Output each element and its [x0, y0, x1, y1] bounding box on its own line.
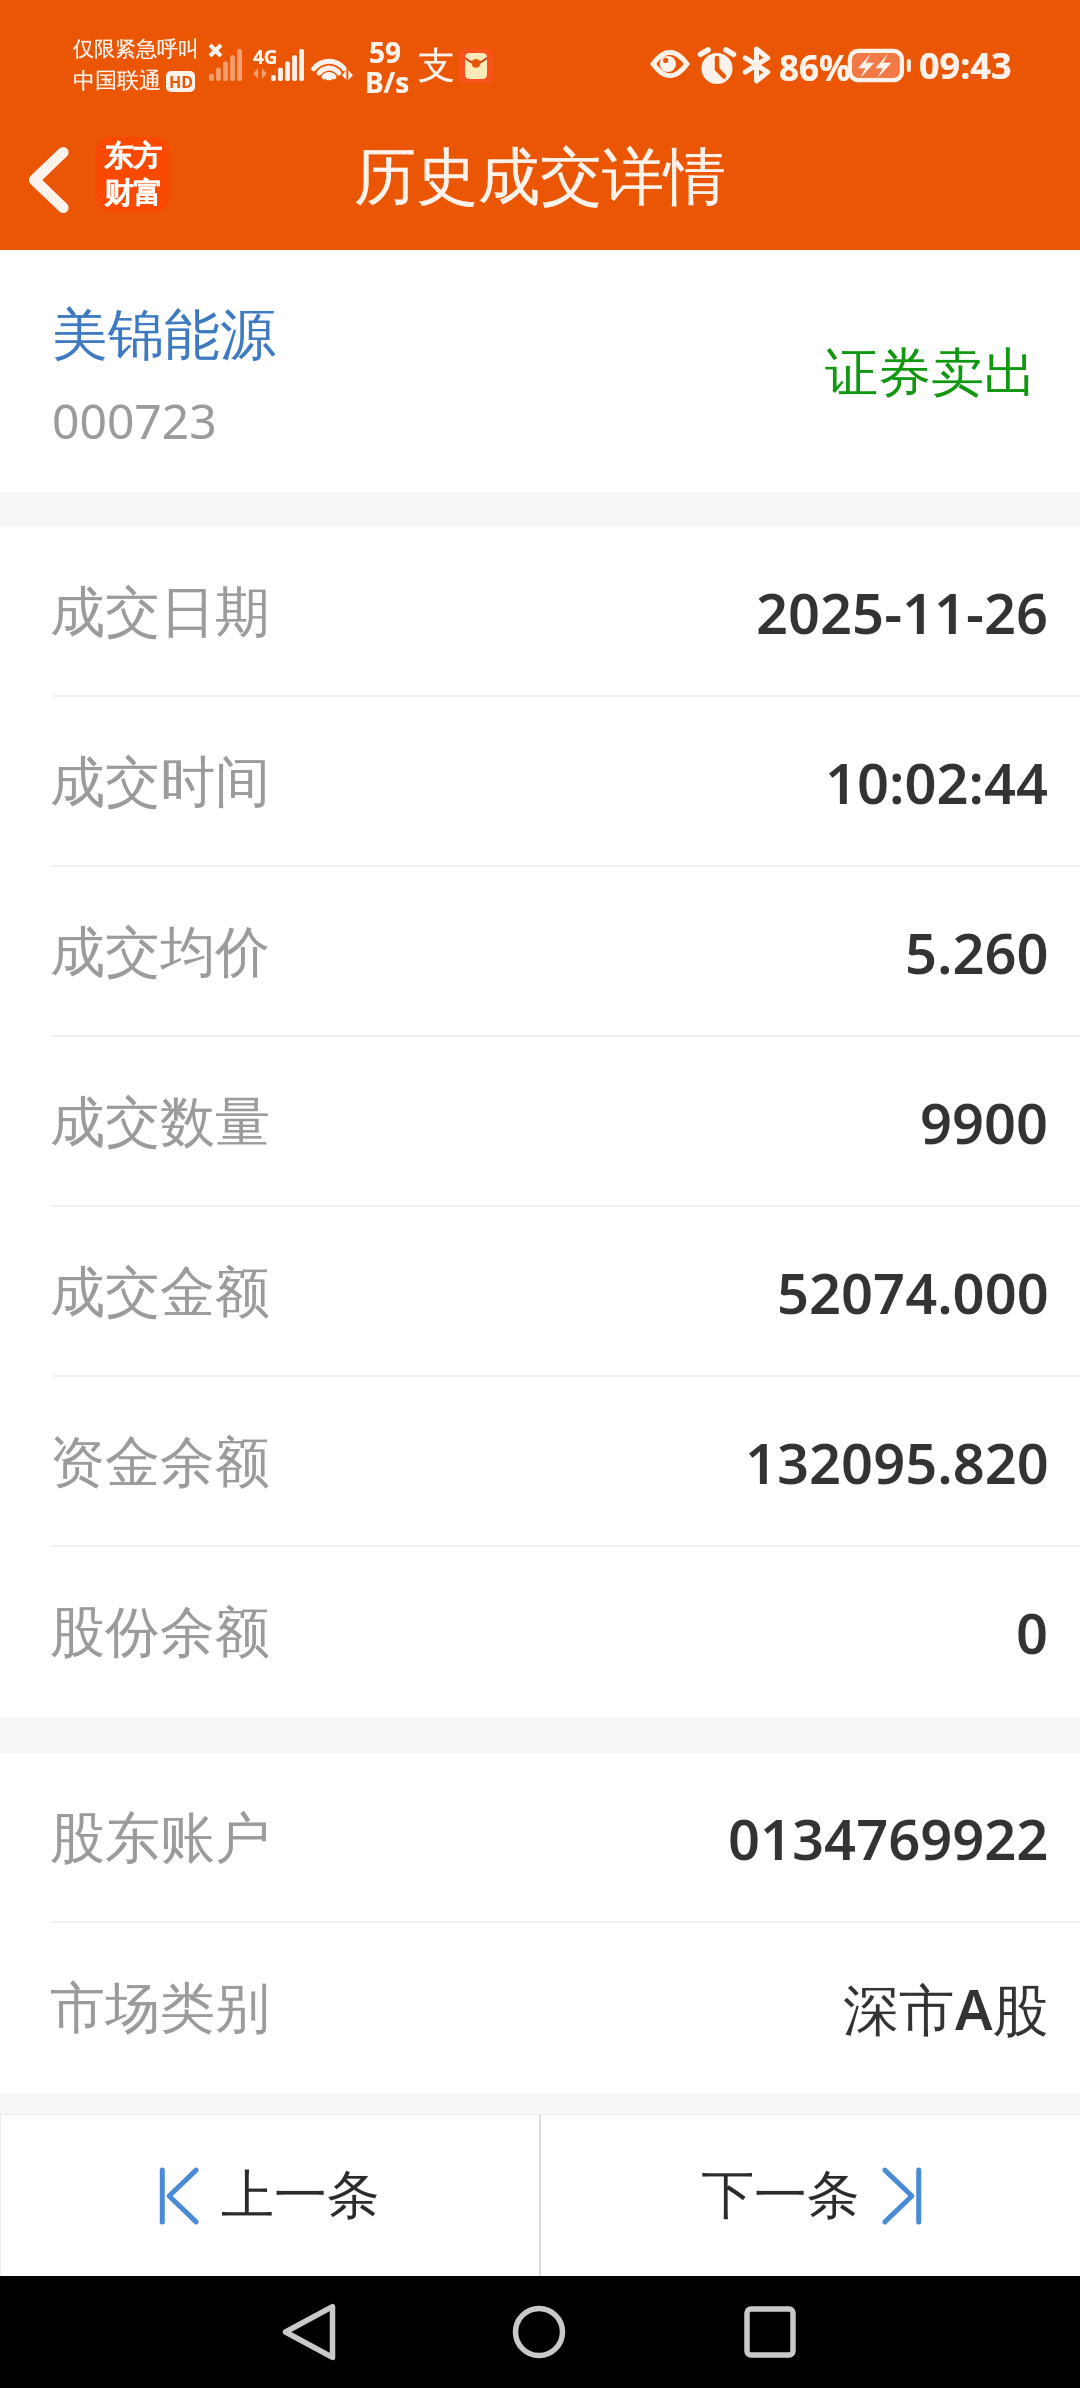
staticText: 财富	[104, 175, 162, 212]
staticText: 10:02:44	[825, 744, 1049, 820]
staticText: 成交数量	[50, 1088, 270, 1157]
button[interactable]: 美锦能源	[0, 250, 1080, 492]
button[interactable]: 成交金额	[0, 1207, 1080, 1377]
staticText: HD	[169, 71, 193, 92]
button[interactable]: 上一条	[1, 2115, 539, 2276]
button[interactable]: 股份余额	[0, 1547, 1080, 1717]
button[interactable]: 资金余额	[0, 1377, 1080, 1547]
button[interactable]: 成交日期	[0, 527, 1080, 697]
staticText: 成交时间	[50, 748, 270, 817]
staticText: 成交均价	[50, 918, 270, 987]
staticText: 股份余额	[50, 1598, 270, 1667]
staticText: 5.260	[905, 914, 1049, 990]
button[interactable]: 下一条	[541, 2115, 1080, 2276]
staticText: 0134769922	[728, 1800, 1049, 1876]
staticText: 成交金额	[50, 1258, 270, 1327]
staticText: 2025-11-26	[756, 574, 1049, 650]
staticText: 股东账户	[50, 1804, 270, 1873]
staticText: 9900	[920, 1084, 1049, 1160]
staticText: 深市A股	[843, 1970, 1049, 2046]
button[interactable]: 市场类别	[0, 1923, 1080, 2093]
staticText: 上一条	[221, 2162, 380, 2229]
button[interactable]: Back	[0, 110, 96, 250]
button[interactable]: 股东账户	[0, 1753, 1080, 1923]
staticText: 市场类别	[50, 1974, 270, 2043]
staticText: 东方	[104, 138, 162, 175]
staticText: 证券卖出	[825, 340, 1037, 407]
button[interactable]: 成交数量	[0, 1037, 1080, 1207]
staticText: 资金余额	[50, 1428, 270, 1497]
staticText: 历史成交详情	[354, 138, 726, 216]
staticText: 下一条	[701, 2162, 860, 2229]
button[interactable]: 成交均价	[0, 867, 1080, 1037]
staticText: 59	[369, 33, 402, 71]
button[interactable]: Back	[253, 2276, 365, 2388]
button[interactable]: Home	[483, 2276, 595, 2388]
button[interactable]: Recents	[714, 2276, 826, 2388]
staticText: 86%	[779, 44, 851, 92]
staticText: 132095.820	[745, 1424, 1049, 1500]
staticText: 美锦能源	[52, 300, 276, 371]
staticText: 支	[418, 42, 455, 89]
staticText: 仅限紧急呼叫	[73, 36, 199, 62]
staticText: 09:43	[919, 41, 1012, 90]
staticText: 000723	[52, 388, 217, 453]
button[interactable]: 成交时间	[0, 697, 1080, 867]
staticText: 成交日期	[50, 578, 270, 647]
staticText: 52074.000	[777, 1254, 1049, 1330]
staticText: B/s	[365, 63, 410, 101]
staticText: 4G	[253, 44, 278, 70]
staticText: 中国联通	[73, 67, 161, 95]
staticText: 0	[1016, 1594, 1049, 1670]
